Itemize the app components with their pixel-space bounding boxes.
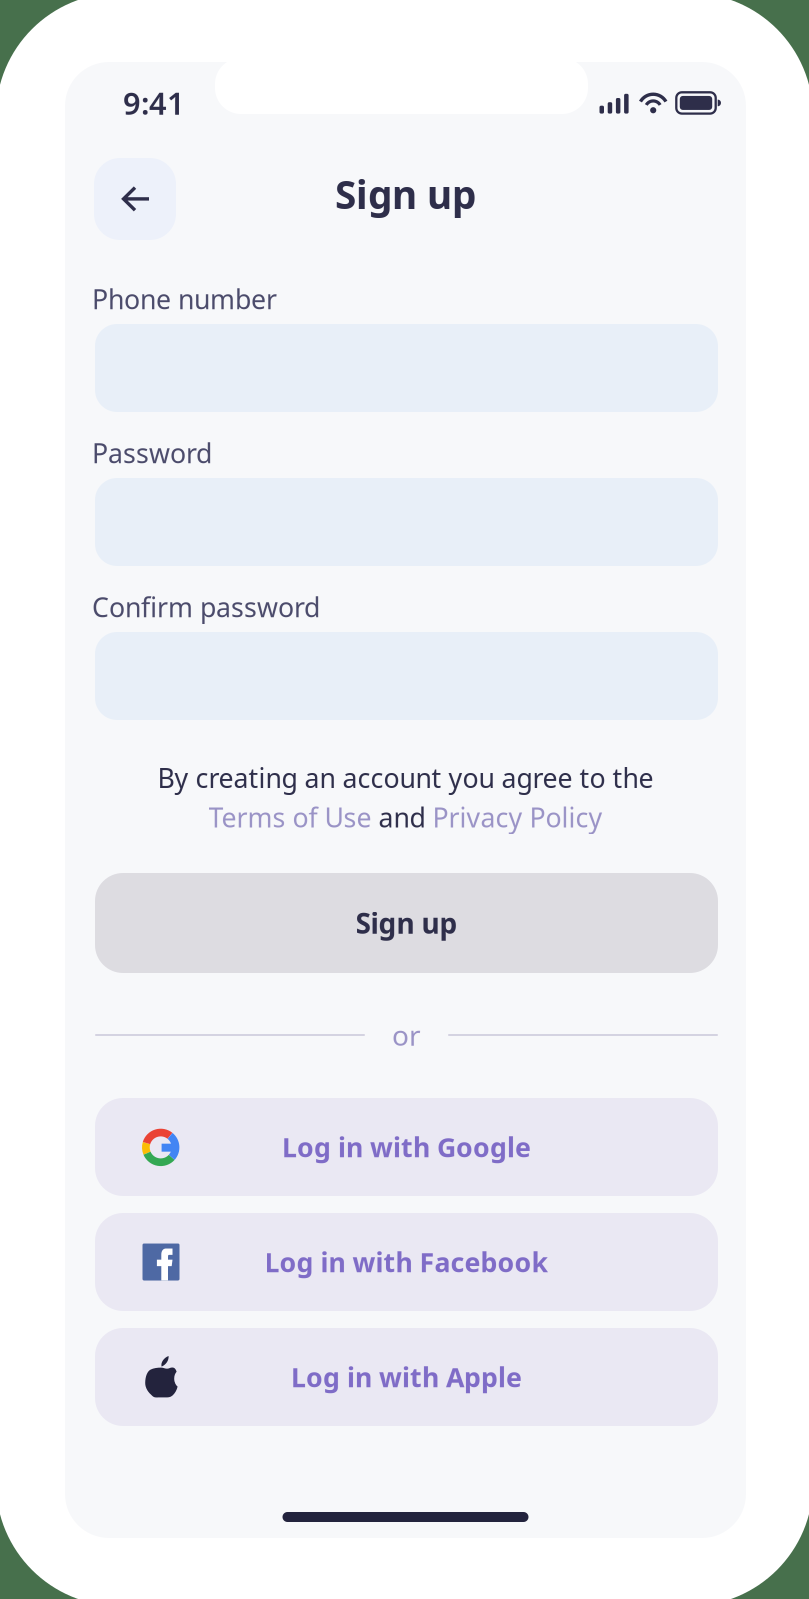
staticText: Password bbox=[92, 435, 212, 471]
staticText: Confirm password bbox=[92, 589, 320, 625]
button[interactable]: Sign up bbox=[95, 873, 718, 973]
staticText: Sign up bbox=[335, 168, 476, 220]
staticText: Terms of Use bbox=[208, 799, 371, 835]
staticText: By creating an account you agree to the bbox=[157, 760, 653, 795]
button[interactable]: Terms of Use bbox=[208, 799, 371, 835]
button[interactable]: Log in with Facebook bbox=[95, 1213, 718, 1311]
staticText: 9:41 bbox=[123, 83, 185, 123]
staticText: Log in with Apple bbox=[291, 1359, 522, 1395]
button[interactable]: Back bbox=[94, 158, 176, 240]
staticText: Sign up bbox=[355, 904, 457, 942]
button[interactable]: Log in with Apple bbox=[95, 1328, 718, 1426]
button[interactable]: Log in with Google bbox=[95, 1098, 718, 1196]
staticText: Log in with Facebook bbox=[264, 1244, 548, 1280]
staticText: Log in with Google bbox=[282, 1129, 531, 1165]
button[interactable]: Privacy Policy bbox=[432, 799, 602, 835]
staticText: and bbox=[371, 799, 432, 835]
staticText: Privacy Policy bbox=[432, 799, 602, 835]
staticText: or bbox=[392, 1016, 421, 1054]
staticText: Phone number bbox=[92, 281, 277, 317]
